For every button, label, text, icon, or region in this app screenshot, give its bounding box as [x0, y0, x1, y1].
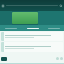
button[interactable]	[22, 25, 43, 31]
button[interactable]: Menu	[1, 4, 5, 8]
button[interactable]	[1, 42, 63, 52]
button[interactable]: Profile	[1, 57, 7, 61]
button[interactable]: Navigation item	[60, 57, 63, 60]
button[interactable]: Featured	[12, 12, 38, 24]
button[interactable]	[1, 32, 63, 41]
button[interactable]: Navigation item	[56, 57, 59, 60]
button[interactable]: Search	[59, 4, 63, 8]
button[interactable]	[0, 25, 22, 31]
button[interactable]	[43, 25, 64, 31]
